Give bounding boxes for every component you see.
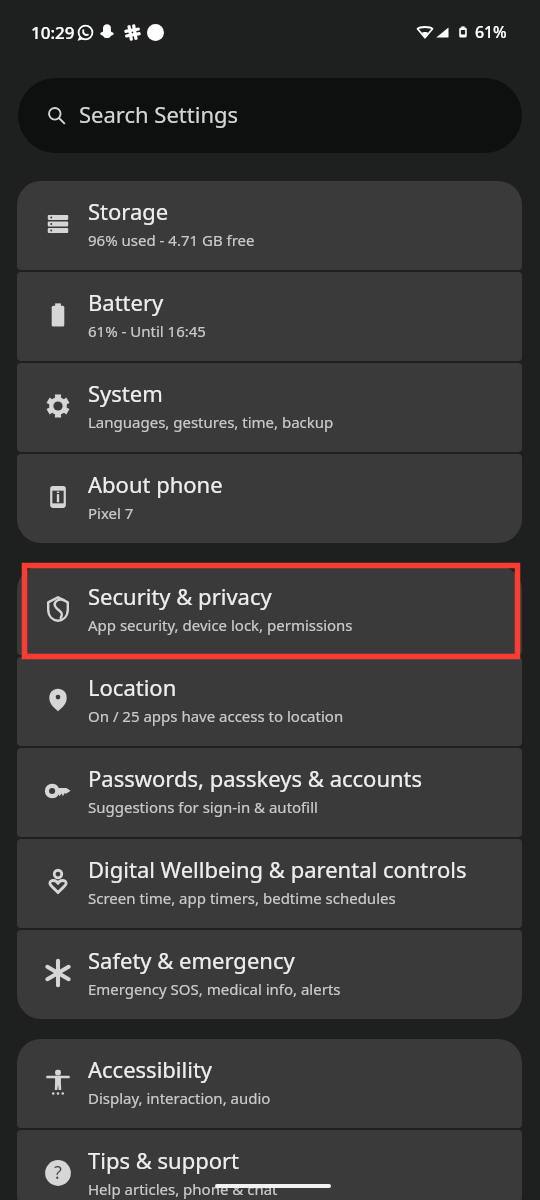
staticText: Safety & emergency [88, 945, 295, 975]
staticText: Languages, gestures, time, backup [88, 412, 334, 432]
staticText: Battery [88, 287, 164, 317]
staticText: Display, interaction, audio [88, 1088, 271, 1108]
button[interactable]: System [17, 363, 522, 452]
button[interactable]: ? [17, 1130, 522, 1200]
staticText: Passwords, passkeys & accounts [88, 763, 423, 793]
staticText: Tips & support [88, 1145, 240, 1175]
staticText: About phone [88, 469, 223, 499]
staticText: Suggestions for sign-in & autofill [88, 797, 318, 817]
staticText: 61% - Until 16:45 [88, 321, 206, 341]
button[interactable]: Storage [17, 181, 522, 270]
staticText: System [88, 378, 163, 408]
staticText: App security, device lock, permissions [88, 615, 353, 635]
staticText: 10:29 [31, 21, 75, 44]
button[interactable]: Digital Wellbeing & parental controls [17, 839, 522, 928]
staticText: Screen time, app timers, bedtime schedul… [88, 888, 396, 908]
button[interactable]: Safety & emergency [17, 930, 522, 1019]
button[interactable]: Battery [17, 272, 522, 361]
staticText: Search Settings [79, 99, 239, 129]
staticText: Accessibility [88, 1054, 213, 1084]
staticText: 61% [475, 21, 507, 43]
staticText: 96% used - 4.71 GB free [88, 230, 255, 250]
staticText: Digital Wellbeing & parental controls [88, 854, 467, 884]
staticText: On / 25 apps have access to location [88, 706, 344, 726]
button[interactable]: Security & privacy [17, 566, 522, 655]
staticText: Emergency SOS, medical info, alerts [88, 979, 341, 999]
staticText: ? [54, 1160, 62, 1185]
button[interactable]: Search Settings [18, 78, 522, 153]
staticText: Pixel 7 [88, 503, 134, 523]
button[interactable]: About phone [17, 454, 522, 543]
staticText: Help articles, phone & chat [88, 1179, 278, 1199]
staticText: Location [88, 672, 177, 702]
staticText: Security & privacy [88, 581, 272, 611]
button[interactable]: Location [17, 657, 522, 746]
button[interactable]: Passwords, passkeys & accounts [17, 748, 522, 837]
staticText: Storage [88, 196, 169, 226]
button[interactable]: Accessibility [17, 1039, 522, 1128]
